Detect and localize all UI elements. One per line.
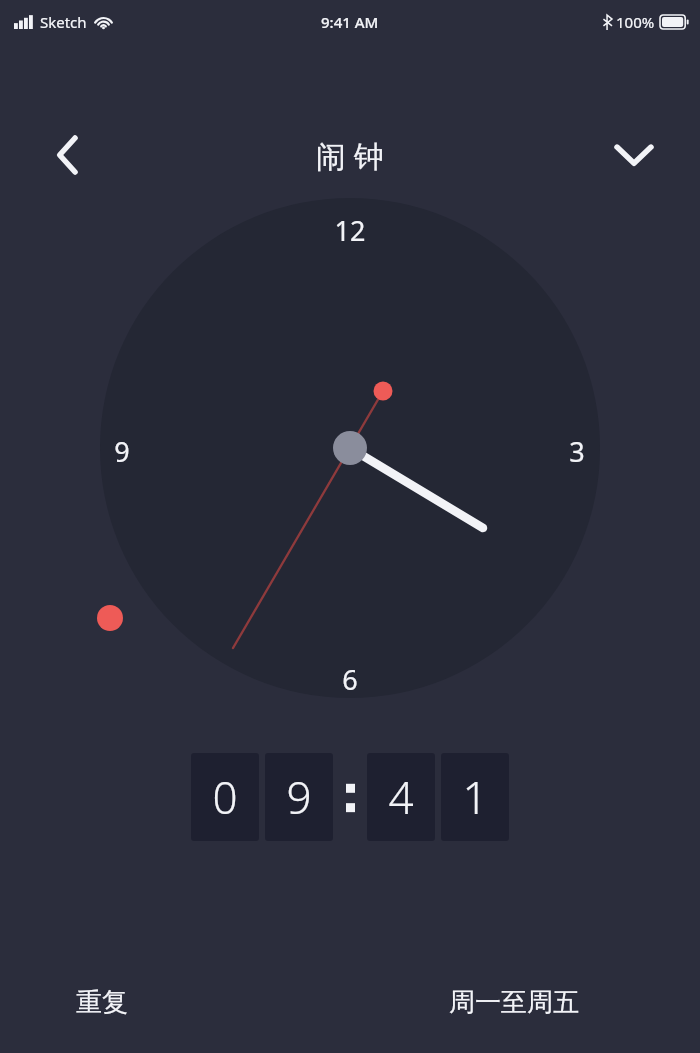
staticText: Sketch — [40, 12, 87, 32]
button[interactable]: 0 — [191, 753, 259, 841]
staticText: 4 — [388, 767, 414, 827]
staticText: 闹 钟 — [316, 135, 384, 176]
button[interactable]: 1 — [441, 753, 509, 841]
button[interactable]: 4 — [367, 753, 435, 841]
staticText: 3 — [557, 433, 597, 470]
staticText: 9 — [102, 433, 142, 470]
button[interactable]: 重复 — [70, 980, 134, 1025]
button[interactable]: Expand — [610, 131, 658, 179]
staticText: 1 — [462, 767, 488, 827]
staticText: 100% — [616, 12, 655, 32]
button[interactable]: 周一至周五 — [443, 980, 585, 1025]
staticText: 0 — [212, 767, 238, 827]
button[interactable]: Back — [44, 131, 92, 179]
staticText: 6 — [330, 661, 370, 698]
staticText: 9 — [286, 767, 312, 827]
staticText: 12 — [330, 212, 370, 249]
staticText: 重复 — [76, 986, 128, 1019]
staticText: 周一至周五 — [449, 986, 579, 1019]
staticText: 9:41 AM — [321, 12, 379, 32]
button[interactable]: 9 — [265, 753, 333, 841]
